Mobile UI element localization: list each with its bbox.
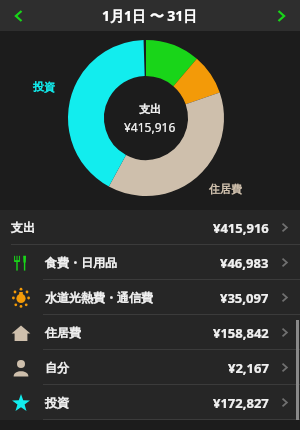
staticText: 1月1日 〜 31日 — [102, 6, 198, 25]
staticText: ¥415,916 — [213, 219, 269, 237]
button[interactable]: 支出 — [0, 210, 300, 245]
staticText: 水道光熱費・通信費 — [45, 290, 153, 305]
staticText: 支出 — [11, 220, 35, 235]
button[interactable]: 自分 — [0, 350, 300, 385]
staticText: 住居費 — [209, 182, 242, 196]
button[interactable]: Previous month — [0, 0, 38, 31]
staticText: ¥35,097 — [220, 289, 269, 307]
button[interactable]: Next month — [262, 0, 300, 31]
staticText: ¥415,916 — [124, 119, 176, 135]
staticText: ¥46,983 — [220, 254, 269, 272]
staticText: 支出 — [139, 102, 161, 116]
staticText: 食費・日用品 — [45, 255, 117, 270]
staticText: ¥172,827 — [213, 394, 269, 412]
staticText: ¥2,167 — [228, 359, 269, 377]
button[interactable]: 投資 — [0, 385, 300, 420]
staticText: 住居費 — [45, 325, 81, 340]
button[interactable]: 水道光熱費・通信費 — [0, 280, 300, 315]
button[interactable]: 食費・日用品 — [0, 245, 300, 280]
staticText: 投資 — [45, 395, 69, 410]
staticText: 投資 — [33, 80, 55, 94]
staticText: 自分 — [45, 360, 69, 375]
button[interactable]: 住居費 — [0, 315, 300, 350]
staticText: ¥158,842 — [213, 324, 269, 342]
